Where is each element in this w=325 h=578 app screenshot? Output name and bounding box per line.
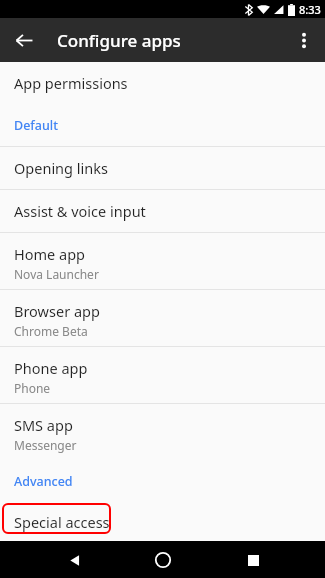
staticText: Messenger [14,437,77,453]
staticText: Chrome Beta [14,323,88,339]
button[interactable]: App permissions [0,62,325,104]
button[interactable]: SMS app [0,404,325,460]
button[interactable]: Home [147,544,179,576]
button[interactable]: Back [6,22,42,58]
staticText: App permissions [14,73,128,93]
staticText: Phone [14,380,51,396]
staticText: Default [14,117,58,134]
button[interactable]: Home app [0,233,325,289]
button[interactable]: Browser app [0,290,325,346]
staticText: Assist & voice input [14,201,146,221]
button[interactable]: Assist & voice input [0,190,325,232]
button[interactable]: Special access [0,502,325,541]
staticText: Nova Launcher [14,266,99,282]
staticText: Phone app [14,358,88,378]
staticText: Browser app [14,301,100,321]
staticText: Opening links [14,158,108,178]
button[interactable]: Phone app [0,347,325,403]
staticText: Advanced [14,473,73,490]
staticText: Special access [14,512,110,532]
staticText: SMS app [14,415,73,435]
staticText: Home app [14,244,85,264]
button[interactable]: More options [286,22,322,58]
staticText: Configure apps [57,29,181,52]
button[interactable]: Back [58,544,90,576]
button[interactable]: Opening links [0,147,325,189]
staticText: 8:33 [299,2,321,17]
button[interactable]: Recent apps [237,544,269,576]
